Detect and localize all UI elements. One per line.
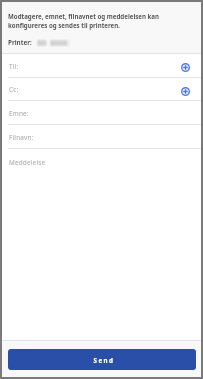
- staticText: Printer:: [8, 38, 32, 47]
- button[interactable]: Filnavn:: [2, 125, 201, 149]
- button[interactable]: Cc:: [2, 78, 201, 101]
- staticText: Meddelelse: [9, 158, 46, 167]
- staticText: Cc:: [9, 85, 19, 94]
- button[interactable]: Add To recipient: [179, 61, 191, 73]
- staticText: Filnavn:: [9, 133, 34, 142]
- staticText: Modtagere, emnet, filnavnet og meddelels…: [8, 12, 193, 30]
- button[interactable]: Til:: [2, 54, 201, 78]
- button[interactable]: Add Cc recipient: [179, 85, 191, 97]
- staticText: Send: [93, 356, 115, 364]
- button[interactable]: Emne:: [2, 101, 201, 125]
- button[interactable]: Meddelelse: [2, 149, 201, 341]
- button[interactable]: Send: [8, 349, 196, 370]
- staticText: Til:: [9, 62, 19, 71]
- staticText: Emne:: [9, 109, 29, 118]
